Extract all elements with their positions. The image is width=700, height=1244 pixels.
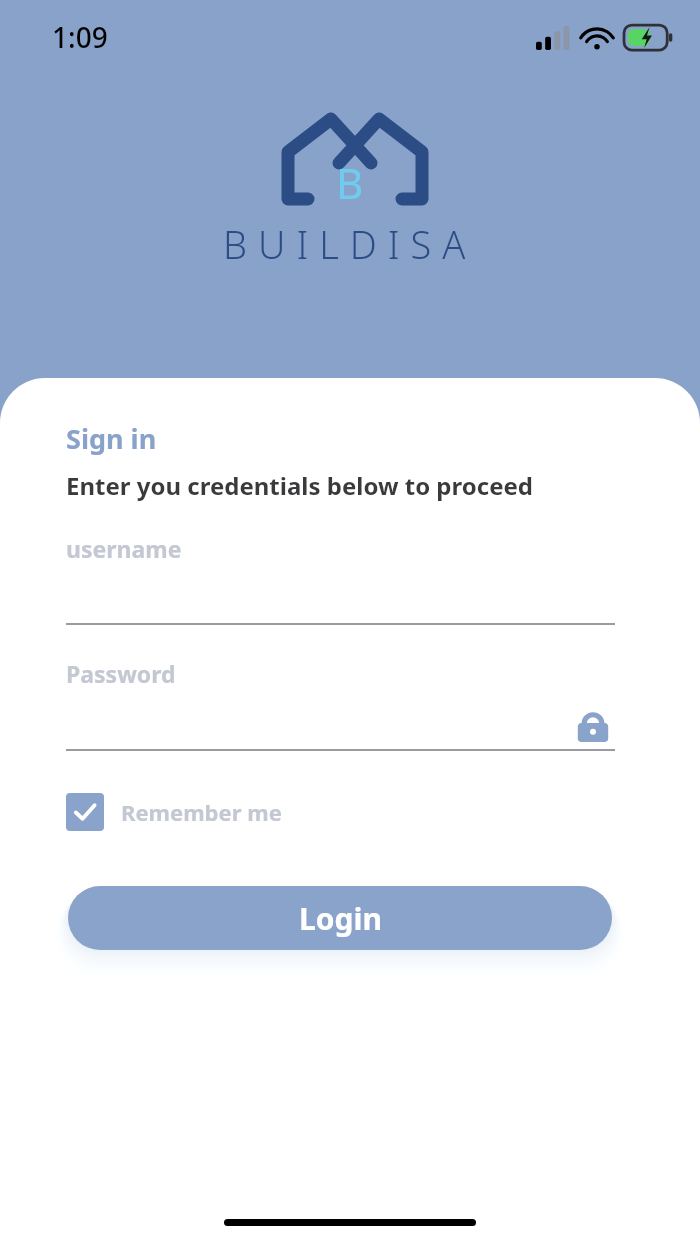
button[interactable]: Show password: [571, 705, 615, 747]
button[interactable]: Remember me: [66, 793, 282, 831]
staticText: B: [336, 154, 364, 211]
staticText: 1:09: [52, 18, 108, 56]
staticText: BUILDISA: [223, 218, 477, 270]
staticText: Password: [66, 658, 176, 689]
staticText: Enter you credentials below to proceed: [66, 469, 533, 502]
staticText: Login: [299, 898, 382, 939]
staticText: username: [66, 533, 182, 564]
staticText: Sign in: [66, 420, 157, 457]
button[interactable]: Login: [68, 886, 612, 950]
staticText: Remember me: [121, 797, 282, 827]
